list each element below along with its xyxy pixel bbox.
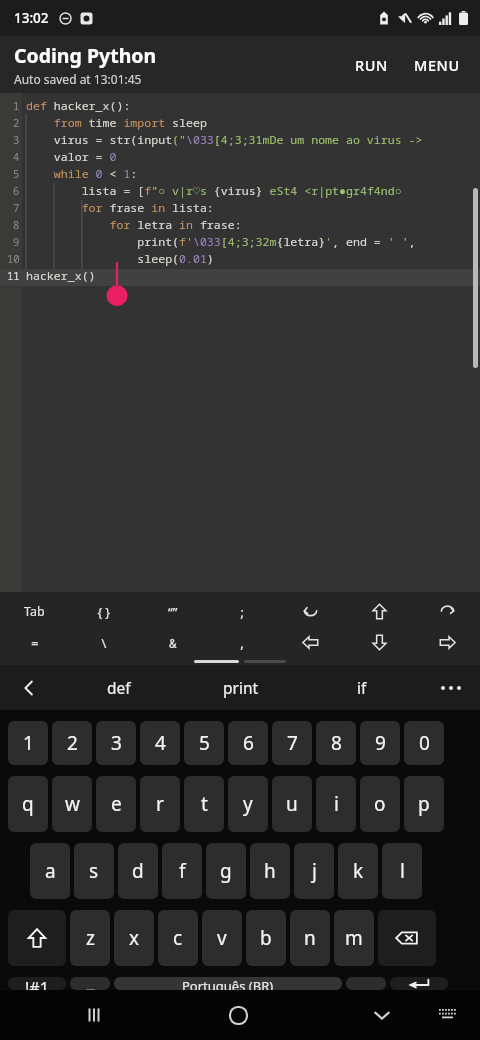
button[interactable]: k xyxy=(338,843,378,899)
staticText: 5 xyxy=(199,730,210,756)
button[interactable]: z xyxy=(70,910,110,966)
button[interactable]: 9 xyxy=(360,721,400,765)
button[interactable]: 8 xyxy=(316,721,356,765)
button[interactable]: Right xyxy=(414,627,480,658)
button[interactable]: b xyxy=(246,910,286,966)
button[interactable]: Shift xyxy=(8,910,66,966)
button[interactable]: 5 xyxy=(184,721,224,765)
button[interactable]: e xyxy=(96,776,136,832)
button[interactable]: if xyxy=(301,665,422,710)
button[interactable]: q xyxy=(8,776,48,832)
button[interactable]: Backspace xyxy=(378,910,436,966)
button[interactable]: RUN xyxy=(345,47,398,83)
staticText: 6 xyxy=(13,184,20,198)
button[interactable]: Down xyxy=(345,627,414,658)
staticText: 13:02 xyxy=(14,9,49,27)
staticText: 11 xyxy=(7,269,20,283)
staticText: {} xyxy=(96,603,112,621)
button[interactable]: More options xyxy=(422,665,480,710)
button[interactable]: t xyxy=(184,776,224,832)
button[interactable]: MENU xyxy=(404,47,470,83)
button[interactable]: j xyxy=(294,843,334,899)
other: Down xyxy=(370,633,389,652)
button[interactable]: print xyxy=(180,665,301,710)
staticText: s xyxy=(89,858,99,884)
staticText: valor = 0 xyxy=(26,149,117,165)
button[interactable]: 4 xyxy=(140,721,180,765)
staticText: & xyxy=(169,634,177,652)
button[interactable]: {} xyxy=(69,596,138,627)
staticText: 2 xyxy=(13,116,20,130)
staticText: Tab xyxy=(24,603,45,620)
staticText: for frase in lista: xyxy=(26,200,214,216)
button[interactable]: Recents xyxy=(70,991,118,1039)
staticText: t xyxy=(201,791,208,817)
staticText: lista = [f"○ v|r♡s {virus} eSt4 <r|pt●gr… xyxy=(26,183,402,199)
button[interactable]: f xyxy=(162,843,202,899)
staticText: i xyxy=(334,791,339,817)
button[interactable]: a xyxy=(30,843,70,899)
button[interactable]: 7 xyxy=(272,721,312,765)
button[interactable]: r xyxy=(140,776,180,832)
button[interactable]: o xyxy=(360,776,400,832)
staticText: q xyxy=(22,791,34,817)
button[interactable]: Previous xyxy=(0,665,58,710)
button[interactable]: 0 xyxy=(404,721,444,765)
button[interactable]: , xyxy=(207,627,276,658)
staticText: 3 xyxy=(13,133,20,147)
button[interactable]: d xyxy=(118,843,158,899)
button[interactable]: & xyxy=(138,627,207,658)
button[interactable]: ; xyxy=(207,596,276,627)
button[interactable]: Home xyxy=(214,991,262,1039)
button[interactable]: !#1 xyxy=(8,977,66,990)
button[interactable]: Redo xyxy=(414,596,480,627)
button[interactable]: w xyxy=(52,776,92,832)
button[interactable]: Undo xyxy=(276,596,345,627)
button[interactable]: Português (BR) xyxy=(114,977,342,990)
button[interactable]: n xyxy=(290,910,330,966)
button[interactable]: l xyxy=(382,843,422,899)
staticText: print(f'\033[4;3;32m{letra}', end = ' ', xyxy=(26,234,416,250)
button[interactable]: g xyxy=(206,843,246,899)
button[interactable]: = xyxy=(0,627,69,658)
staticText: m xyxy=(345,925,363,951)
button[interactable]: s xyxy=(74,843,114,899)
button[interactable]: p xyxy=(404,776,444,832)
staticText: 9 xyxy=(375,730,386,756)
button[interactable]: – xyxy=(70,977,110,990)
button[interactable]: 3 xyxy=(96,721,136,765)
button[interactable]: “” xyxy=(138,596,207,627)
button[interactable]: x xyxy=(114,910,154,966)
button[interactable]: Enter xyxy=(390,977,448,990)
staticText: v xyxy=(217,925,227,951)
staticText: 4 xyxy=(13,150,20,164)
staticText: from time import sleep xyxy=(26,115,207,131)
button[interactable]: Left xyxy=(276,627,345,658)
button[interactable]: Tab xyxy=(0,596,69,627)
button[interactable]: Hide keyboard xyxy=(358,991,406,1039)
button[interactable]: def xyxy=(58,665,180,710)
button[interactable]: . xyxy=(346,977,386,990)
button[interactable]: i xyxy=(316,776,356,832)
button[interactable]: c xyxy=(158,910,198,966)
button[interactable]: Up xyxy=(345,596,414,627)
staticText: 0 xyxy=(419,730,430,756)
staticText: p xyxy=(418,791,430,817)
staticText: 8 xyxy=(331,730,342,756)
staticText: 7 xyxy=(13,201,20,215)
button[interactable]: v xyxy=(202,910,242,966)
button[interactable]: 2 xyxy=(52,721,92,765)
button[interactable]: h xyxy=(250,843,290,899)
staticText: u xyxy=(286,791,298,817)
button[interactable]: u xyxy=(272,776,312,832)
button[interactable]: \ xyxy=(69,627,138,658)
button[interactable]: m xyxy=(334,910,374,966)
staticText: 3 xyxy=(111,730,122,756)
staticText: \ xyxy=(100,634,108,652)
button[interactable]: 6 xyxy=(228,721,268,765)
staticText: “” xyxy=(168,603,178,621)
button[interactable]: 1 xyxy=(8,721,48,765)
button[interactable]: y xyxy=(228,776,268,832)
button[interactable]: Keyboard layout xyxy=(426,993,470,1037)
